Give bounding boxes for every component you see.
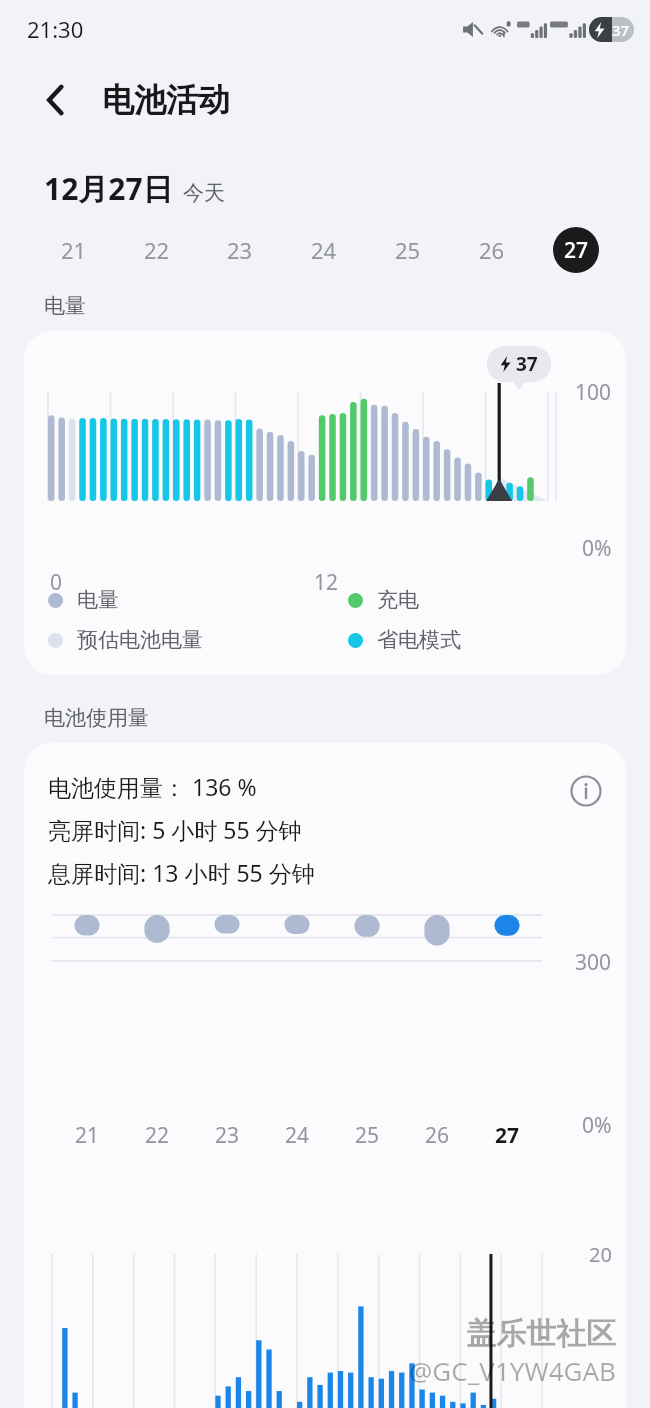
staticText: 12 — [314, 568, 339, 597]
staticText: 0 — [50, 568, 63, 597]
button[interactable]: 26 — [450, 223, 534, 277]
staticText: 22 — [144, 235, 170, 265]
staticText: 电量 — [77, 587, 119, 613]
button[interactable]: 信息 — [564, 769, 608, 813]
staticText: 电池使用量： 136 % — [48, 771, 257, 802]
staticText: 37 — [516, 351, 538, 377]
staticText: 26 — [479, 235, 505, 265]
staticText: 25 — [355, 1121, 380, 1150]
staticText: 23 — [215, 1121, 240, 1150]
button[interactable]: 21 — [32, 223, 115, 277]
staticText: 电池使用量 — [44, 705, 149, 731]
staticText: 今天 — [183, 180, 225, 206]
staticText: 20 — [589, 1241, 612, 1268]
staticText: 盖乐世社区 — [466, 1315, 616, 1353]
staticText: 24 — [311, 235, 337, 265]
button[interactable]: 23 — [198, 223, 282, 277]
staticText: 27 — [495, 1121, 520, 1150]
staticText: 预估电池电量 — [77, 627, 203, 653]
button[interactable]: 27 — [534, 223, 618, 277]
staticText: 24 — [285, 1121, 310, 1150]
staticText: 12月27日 — [44, 168, 173, 209]
staticText: 省电模式 — [377, 627, 461, 653]
button[interactable]: 24 — [282, 223, 366, 277]
button[interactable]: 返回 — [32, 76, 80, 124]
staticText: 100 — [575, 378, 612, 407]
staticText: 21 — [61, 235, 87, 265]
button[interactable]: 25 — [366, 223, 450, 277]
staticText: 0% — [582, 1111, 612, 1140]
staticText: 26 — [425, 1121, 450, 1150]
staticText: 25 — [395, 235, 421, 265]
staticText: 息屏时间: 13 小时 55 分钟 — [48, 857, 315, 888]
staticText: 充电 — [377, 587, 419, 613]
staticText: 37 — [612, 20, 630, 40]
staticText: 电量 — [44, 293, 86, 319]
staticText: 300 — [575, 948, 612, 977]
staticText: 23 — [227, 235, 253, 265]
staticText: 21:30 — [27, 14, 84, 44]
button[interactable]: 22 — [115, 223, 198, 277]
staticText: 电池活动 — [102, 80, 230, 120]
staticText: @GC_V1YW4GAB — [409, 1353, 616, 1388]
staticText: 亮屏时间: 5 小时 55 分钟 — [48, 814, 302, 845]
staticText: 27 — [564, 236, 589, 265]
staticText: 0% — [582, 534, 612, 563]
staticText: 22 — [145, 1121, 170, 1150]
staticText: 21 — [75, 1121, 100, 1150]
